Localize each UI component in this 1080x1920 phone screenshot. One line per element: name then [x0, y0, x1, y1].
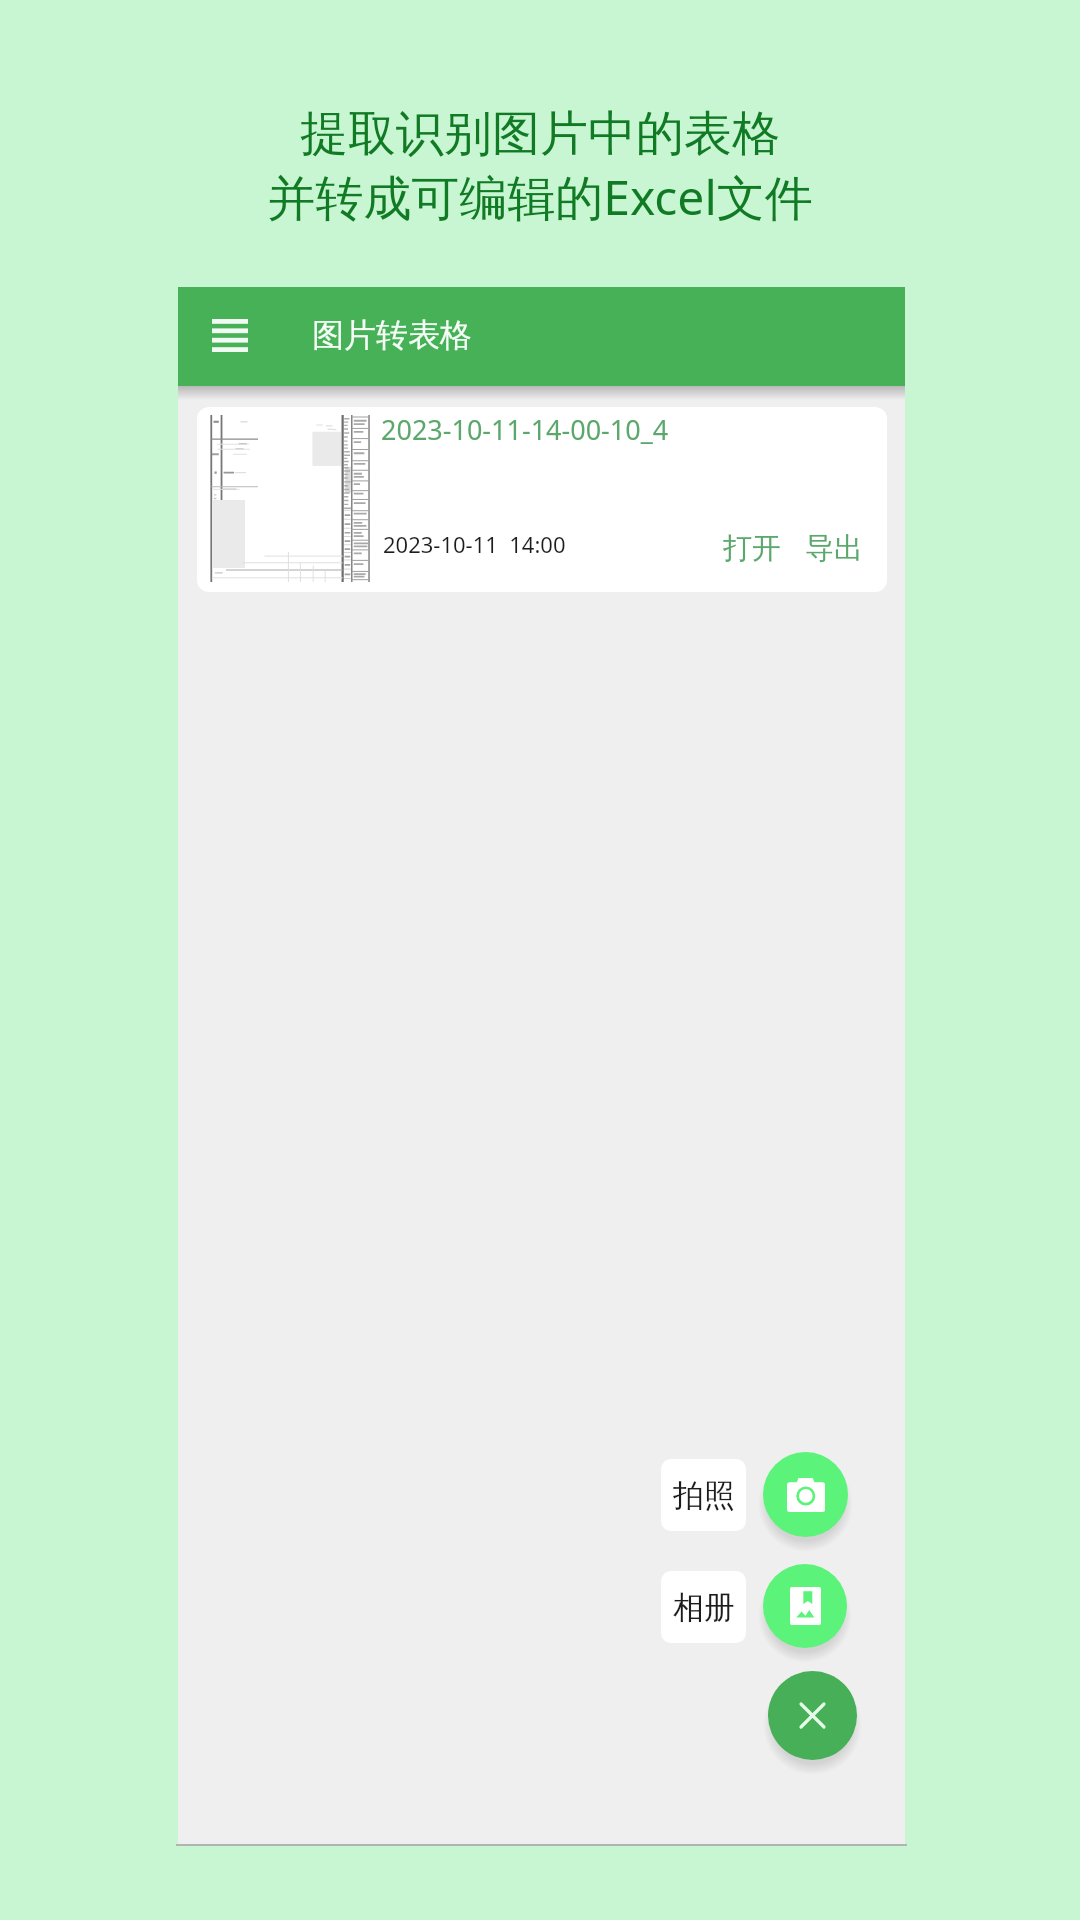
- staticText: 导出: [805, 530, 863, 567]
- staticText: 提取识别图片中的表格: [300, 104, 780, 164]
- button[interactable]: Menu: [195, 300, 265, 370]
- button[interactable]: Close menu: [768, 1671, 857, 1760]
- staticText: 2023-10-11 14:00: [383, 529, 566, 559]
- button[interactable]: 导出: [787, 512, 881, 585]
- button[interactable]: 2023-10-11-14-00-10_4: [197, 407, 887, 592]
- button[interactable]: 相册: [661, 1571, 746, 1643]
- button[interactable]: 拍照: [661, 1459, 746, 1531]
- staticText: 打开: [723, 530, 781, 567]
- button[interactable]: Take photo: [763, 1452, 848, 1537]
- staticText: 图片转表格: [312, 315, 472, 355]
- staticText: 并转成可编辑的Excel文件: [267, 164, 813, 230]
- button[interactable]: 打开: [705, 512, 799, 585]
- staticText: 相册: [673, 1588, 735, 1627]
- button[interactable]: Pick from album: [763, 1564, 847, 1648]
- staticText: 拍照: [673, 1476, 735, 1515]
- staticText: 2023-10-11-14-00-10_4: [381, 411, 669, 448]
